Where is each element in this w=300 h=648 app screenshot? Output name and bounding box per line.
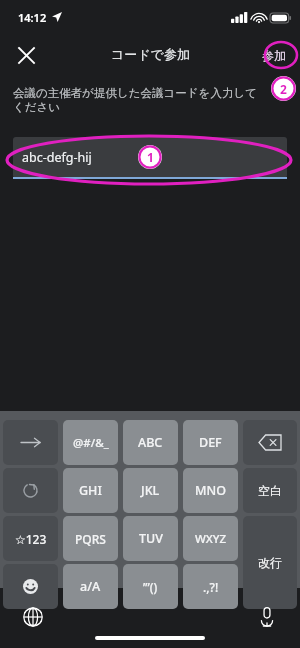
button[interactable]: ☆123 [3,516,58,561]
button[interactable]: 参加 [256,44,292,67]
button[interactable]: PQRS [63,516,118,561]
button[interactable]: ’”() [123,564,178,609]
staticText: 参加 [262,48,286,63]
staticText: @#/&_ [73,435,109,451]
staticText: ☆123 [15,531,47,547]
button[interactable]: .,?! [183,564,238,609]
staticText: コードで参加 [111,46,190,62]
staticText: 改行 [258,555,282,570]
button[interactable]: 元に戻す [3,468,58,513]
staticText: 空白 [258,483,282,498]
button[interactable]: a/A [63,564,118,609]
staticText: 2 [280,81,287,97]
button[interactable]: JKL [123,468,178,513]
button[interactable]: 改行 [243,516,297,609]
staticText: PQRS [75,531,106,547]
staticText: .,?! [203,579,219,595]
staticText: ください [13,100,61,114]
staticText: 1 [147,149,154,165]
staticText: ABC [138,434,163,451]
button[interactable]: TUV [123,516,178,561]
staticText: 会議の主催者が提供した会議コードを入力して [13,86,257,100]
staticText: DEF [199,434,222,451]
button[interactable]: GHI [63,468,118,513]
button[interactable]: 音声入力 [248,598,286,636]
staticText: WXYZ [195,531,227,547]
button[interactable]: 閉じる [6,38,46,72]
staticText: GHI [79,482,102,499]
staticText: 14:12 [18,10,47,25]
button[interactable]: 言語切替 [14,598,52,636]
button[interactable]: DEF [183,420,238,465]
staticText: JKL [141,482,160,499]
staticText: abc-defg-hij [22,149,92,166]
staticText: ’”() [143,579,158,595]
button[interactable]: 空白 [243,468,297,513]
staticText: a/A [80,578,101,595]
button[interactable]: abc-defg-hij [13,137,287,178]
staticText: TUV [139,530,163,547]
staticText: MNO [195,482,226,499]
button[interactable]: → arrow [3,420,58,465]
button[interactable]: MNO [183,468,238,513]
button[interactable]: @#/&_ [63,420,118,465]
button[interactable]: 削除 [243,420,297,465]
button[interactable]: WXYZ [183,516,238,561]
button[interactable]: ABC [123,420,178,465]
button[interactable]: 絵文字 [3,564,58,609]
